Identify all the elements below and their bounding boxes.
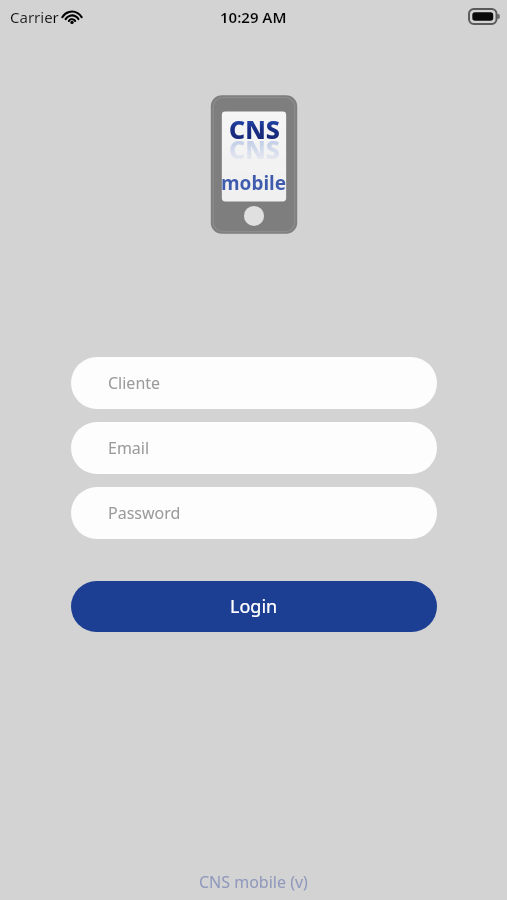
staticText: CNS mobile (v) (199, 871, 308, 893)
staticText: mobile (221, 170, 287, 196)
other: CNS mobile logo (206, 92, 302, 237)
button[interactable]: Login (71, 581, 437, 632)
staticText: 10:29 AM (220, 7, 287, 27)
staticText: CNS (229, 112, 280, 146)
button[interactable]: Cliente (71, 357, 437, 409)
staticText: Password (108, 502, 181, 524)
staticText: Carrier (10, 7, 59, 27)
staticText: Login (230, 594, 278, 619)
staticText: CNS (229, 132, 280, 166)
button[interactable]: Email (71, 422, 437, 474)
staticText: Email (108, 437, 150, 459)
button[interactable]: Password (71, 487, 437, 539)
staticText: Cliente (108, 372, 161, 394)
